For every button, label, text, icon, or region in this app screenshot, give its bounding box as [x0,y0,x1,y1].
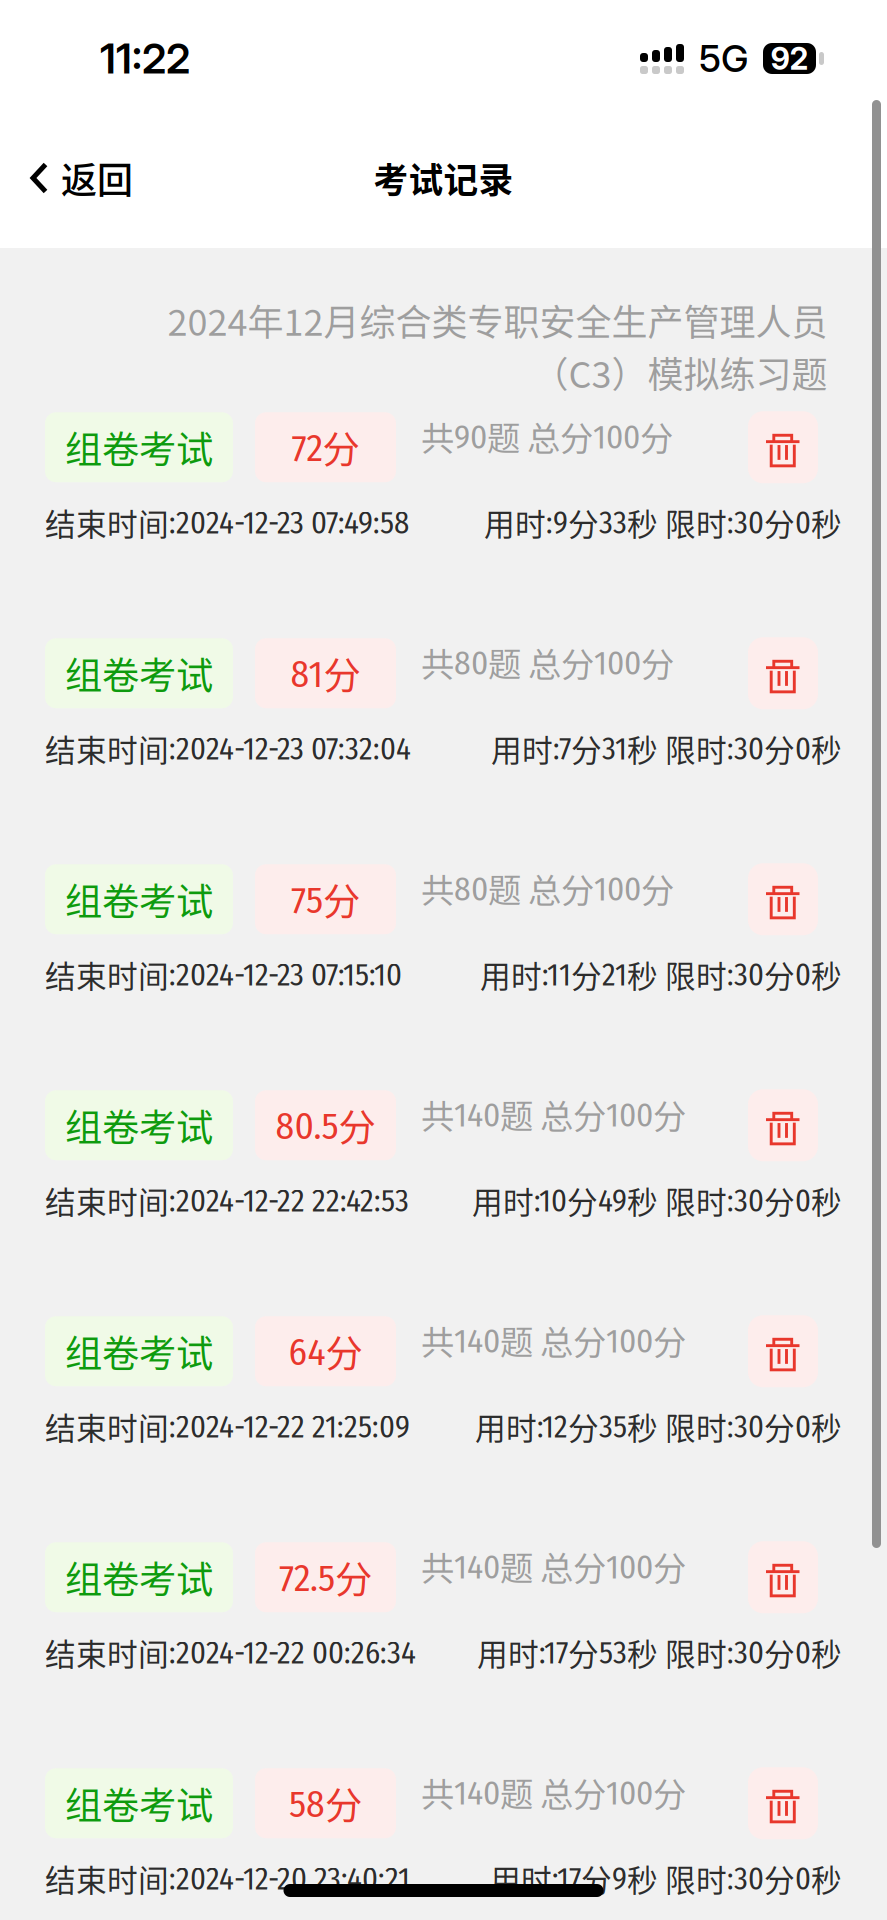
staticText: 组卷考试 [65,1324,213,1378]
staticText: 共80题 总分100分 [421,864,674,912]
staticText: 返回 [61,152,133,204]
staticText: 结束时间:2024-12-22 00:26:34 [45,1630,416,1674]
staticText: 72.5分 [279,1550,372,1604]
staticText: 用时:17分53秒 限时:30分0秒 [477,1630,842,1674]
staticText: 用时:11分21秒 限时:30分0秒 [480,952,842,996]
staticText: 结束时间:2024-12-22 22:42:53 [45,1178,409,1222]
staticText: 72分 [291,420,359,474]
staticText: 共140题 总分100分 [421,1316,686,1364]
staticText: 用时:12分35秒 限时:30分0秒 [475,1404,842,1448]
staticText: 58分 [289,1776,362,1830]
button[interactable]: 返回 [0,128,155,228]
staticText: 81分 [290,646,360,700]
staticText: 共90题 总分100分 [421,412,673,460]
staticText: 用时:7分31秒 限时:30分0秒 [491,726,842,770]
staticText: 结束时间:2024-12-23 07:49:58 [45,500,409,544]
staticText: 组卷考试 [65,1776,213,1830]
staticText: 64分 [288,1324,362,1378]
staticText: 5G [699,36,748,81]
button[interactable]: 删除 [748,1315,818,1387]
staticText: 用时:9分33秒 限时:30分0秒 [484,500,842,544]
staticText: 共140题 总分100分 [421,1542,686,1590]
button[interactable]: 删除 [748,1541,818,1613]
staticText: 用时:10分49秒 限时:30分0秒 [472,1178,842,1222]
staticText: 92 [770,40,808,77]
button[interactable]: 删除 [748,637,818,709]
staticText: 共80题 总分100分 [421,638,674,686]
staticText: 共140题 总分100分 [421,1090,686,1138]
button[interactable]: 删除 [748,863,818,935]
staticText: 11:22 [100,33,190,83]
staticText: 组卷考试 [65,420,213,474]
staticText: 75分 [291,872,360,926]
staticText: 组卷考试 [65,646,213,700]
staticText: 80.5分 [275,1098,375,1152]
button[interactable]: 删除 [748,411,818,483]
staticText: 组卷考试 [65,1098,213,1152]
staticText: 结束时间:2024-12-23 07:15:10 [45,952,402,996]
staticText: 共140题 总分100分 [421,1768,686,1816]
staticText: 组卷考试 [65,872,213,926]
staticText: 考试记录 [373,153,513,203]
staticText: 结束时间:2024-12-20 23:40:21 [45,1856,410,1900]
button[interactable]: 删除 [748,1089,818,1161]
button[interactable]: 删除 [748,1767,818,1839]
staticText: 组卷考试 [65,1550,213,1604]
staticText: 用时:17分9秒 限时:30分0秒 [490,1856,842,1900]
staticText: 结束时间:2024-12-23 07:32:04 [45,726,411,770]
staticText: 结束时间:2024-12-22 21:25:09 [45,1404,410,1448]
staticText: 2024年12月综合类专职安全生产管理人员（C3）模拟练习题 [167,294,827,398]
